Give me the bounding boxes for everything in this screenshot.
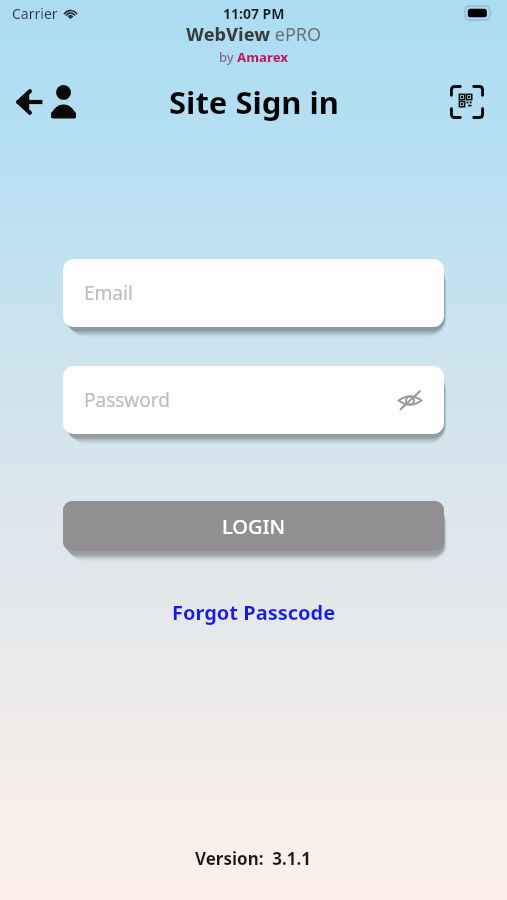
button[interactable]: Email xyxy=(63,259,444,327)
staticText: by Amarex xyxy=(219,48,289,66)
staticText: Version: 3.1.1 xyxy=(195,847,312,870)
button[interactable]: Forgot Passcode xyxy=(164,595,344,630)
button[interactable]: Back xyxy=(14,78,84,126)
staticText: Forgot Passcode xyxy=(172,599,336,626)
staticText: Email xyxy=(84,280,133,306)
button[interactable]: Scan QR code xyxy=(443,78,491,126)
button[interactable]: Password xyxy=(63,366,444,434)
button[interactable]: LOGIN xyxy=(63,501,444,551)
staticText: WebView ePRO xyxy=(186,22,322,47)
staticText: 11:07 PM xyxy=(223,4,285,23)
staticText: LOGIN xyxy=(222,513,286,540)
button[interactable]: Show password xyxy=(390,380,430,420)
staticText: Carrier xyxy=(12,4,58,23)
staticText: Site Sign in xyxy=(169,81,339,123)
staticText: Password xyxy=(84,387,170,413)
